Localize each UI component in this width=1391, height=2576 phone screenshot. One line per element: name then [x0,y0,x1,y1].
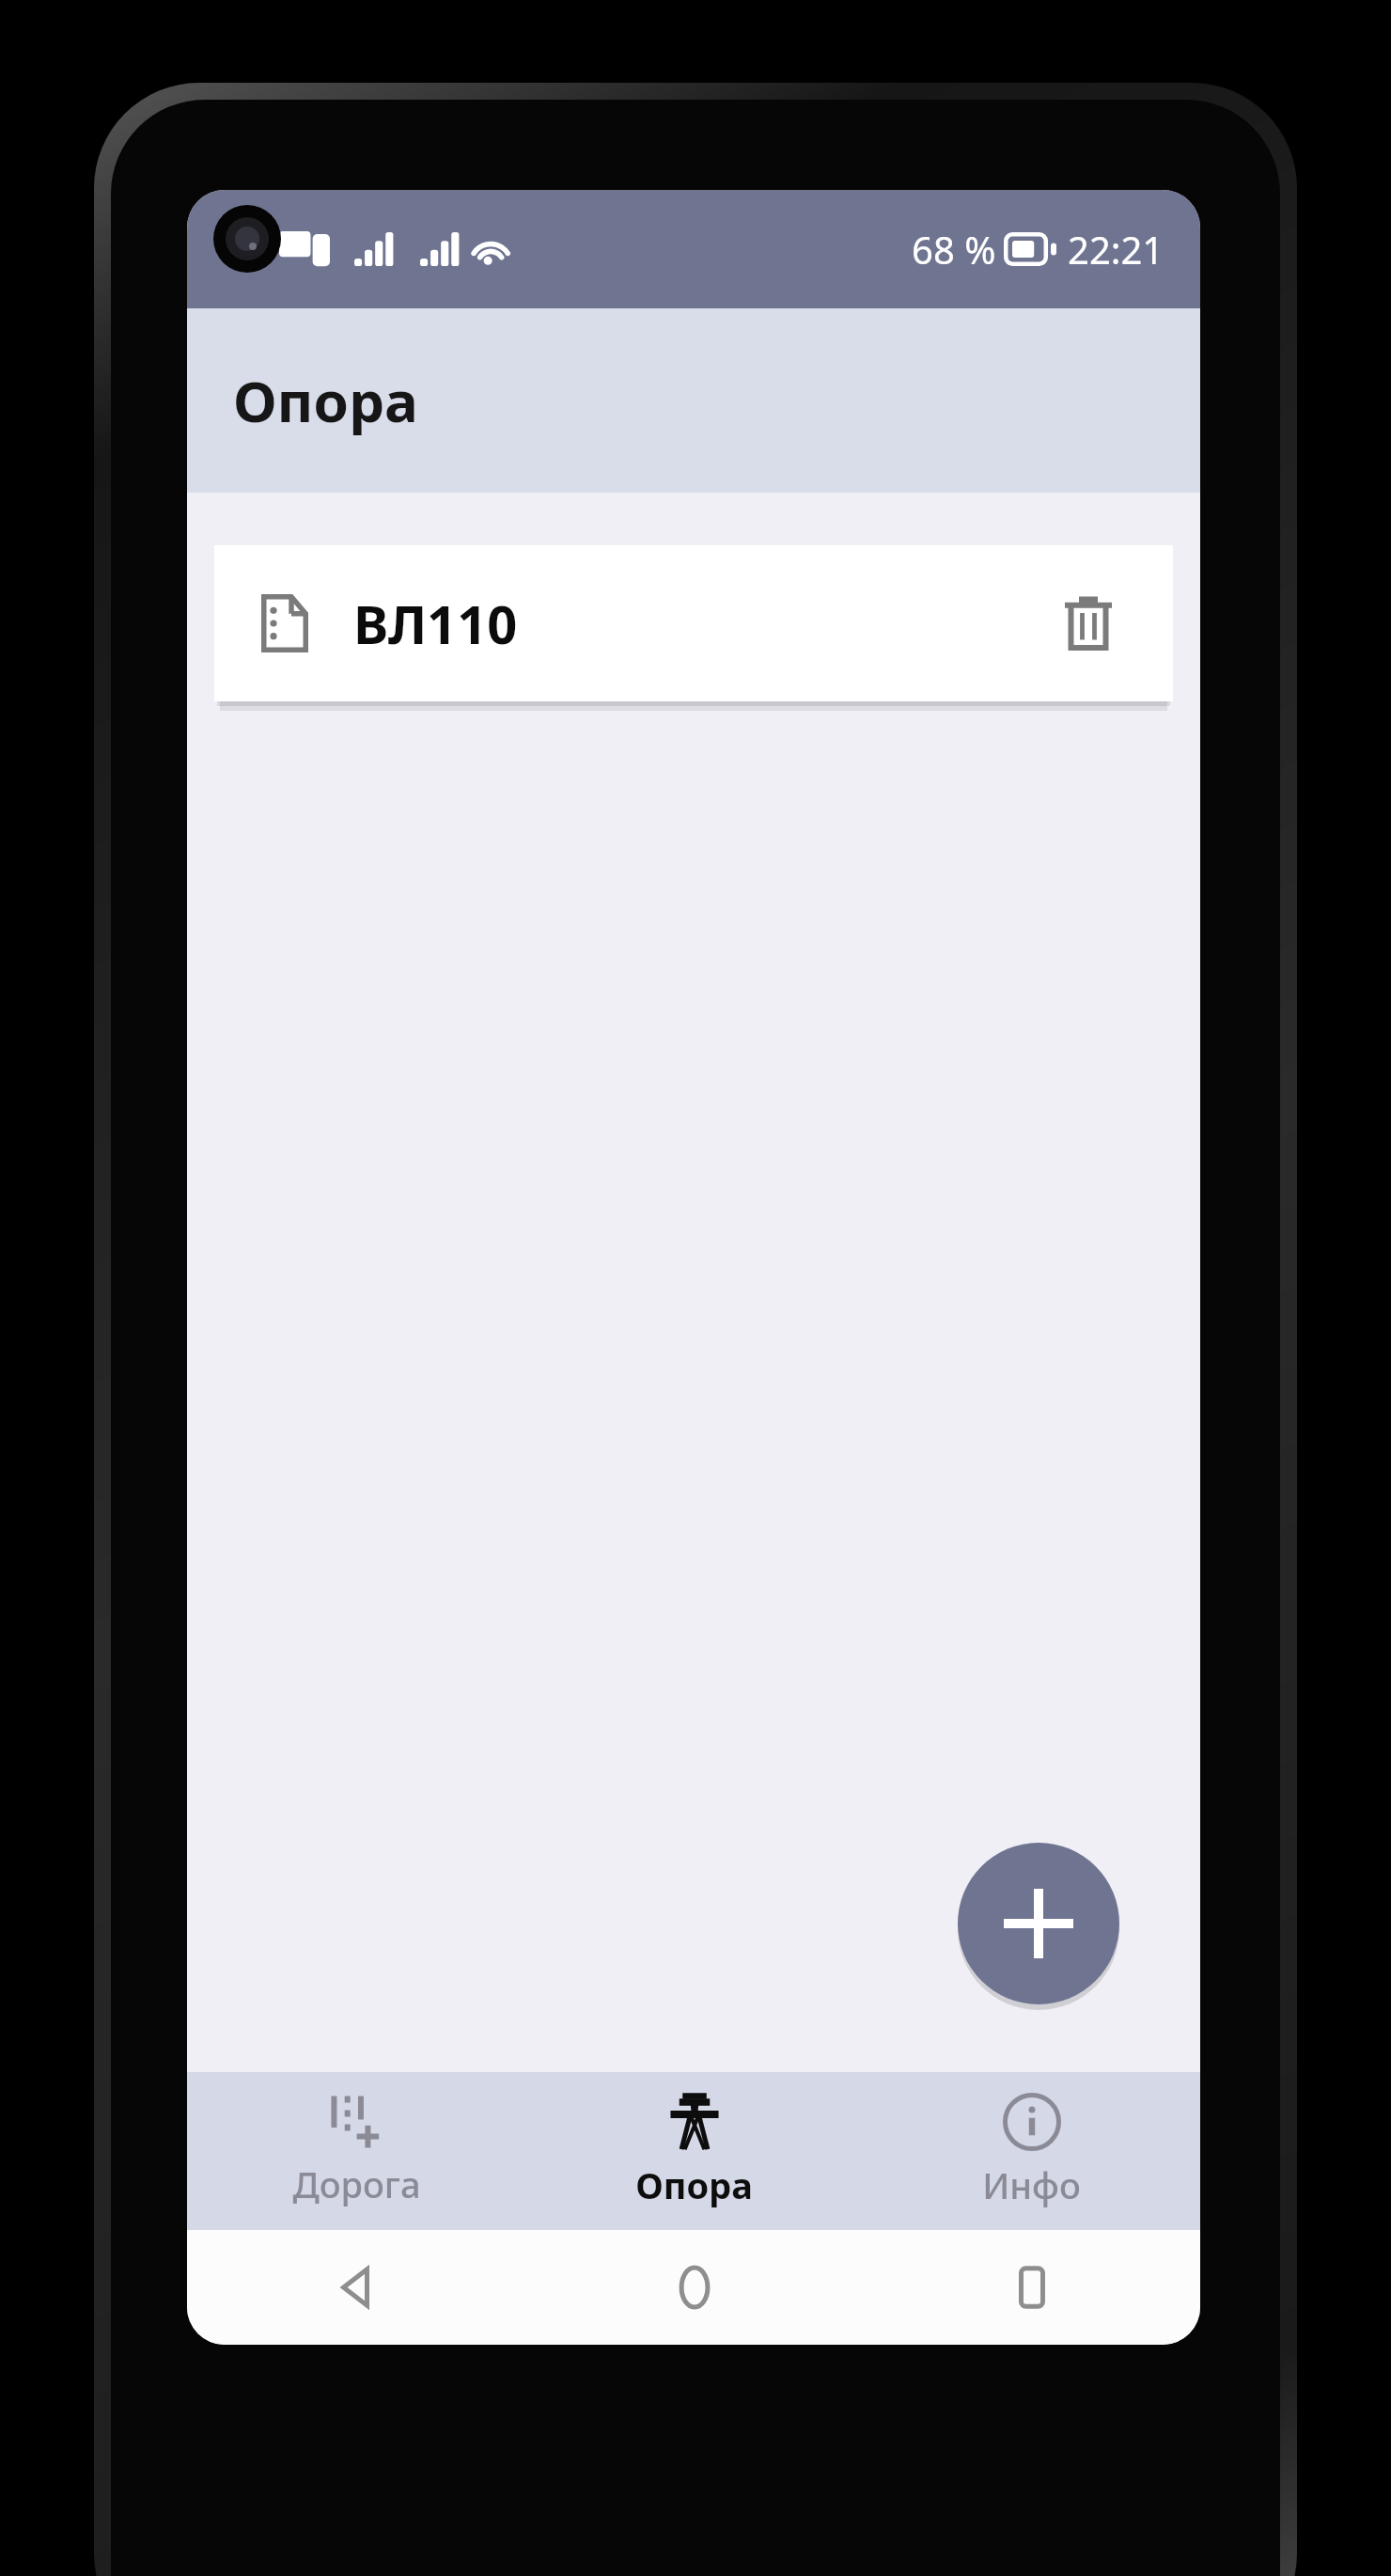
button[interactable]: Домой [525,2230,863,2345]
button[interactable]: ВЛ110 [214,545,1173,701]
button[interactable]: Обзор [863,2230,1200,2345]
button[interactable]: Опора [525,2072,863,2230]
staticText: 68 % [912,224,996,275]
button[interactable]: Инфо [863,2072,1200,2230]
staticText: Опора [233,362,418,439]
button[interactable]: Дорога [187,2072,525,2230]
button[interactable]: Добавить [958,1843,1119,2004]
staticText: ВЛ110 [353,588,518,659]
button[interactable]: Удалить [1045,580,1132,667]
staticText: 22:21 [1068,224,1164,275]
staticText: Опора [635,2160,753,2209]
button[interactable]: Назад [187,2230,525,2345]
staticText: Инфо [982,2160,1081,2209]
staticText: Дорога [292,2160,421,2208]
